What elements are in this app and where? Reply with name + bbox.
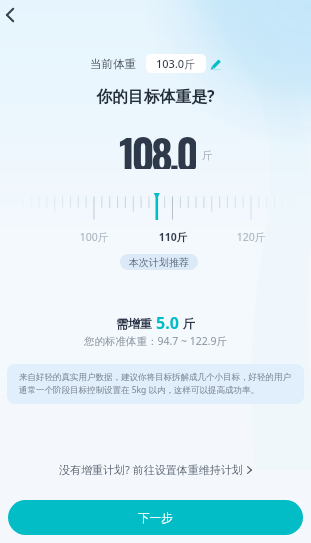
staticText: 下一步 bbox=[138, 511, 173, 525]
staticText: 100斤 bbox=[64, 230, 124, 244]
staticText: 斤 bbox=[202, 149, 213, 162]
staticText: 110斤 bbox=[143, 230, 203, 244]
staticText: 本次计划推荐 bbox=[129, 256, 189, 269]
staticText: 需增重 bbox=[116, 316, 152, 331]
staticText: 108.0 bbox=[119, 122, 196, 169]
staticText: 斤 bbox=[183, 316, 195, 331]
staticText: 来自好轻的真实用户数据，建议你将目标拆解成几个小目标，好轻的用户通常一个阶段目标… bbox=[19, 372, 294, 396]
staticText: 120斤 bbox=[221, 230, 281, 244]
button[interactable]: 没有增重计划? 前往设置体重维持计划 bbox=[0, 460, 311, 479]
staticText: 5.0 bbox=[156, 312, 179, 334]
button[interactable]: 下一步 bbox=[8, 500, 303, 535]
staticText: 当前体重 bbox=[90, 57, 136, 71]
staticText: 103.0斤 bbox=[156, 56, 196, 71]
button[interactable]: Edit weight bbox=[209, 55, 222, 73]
staticText: 您的标准体重：94.7 ~ 122.9斤 bbox=[0, 334, 311, 348]
button[interactable]: 本次计划推荐 bbox=[120, 254, 198, 270]
staticText: 没有增重计划? 前往设置体重维持计划 bbox=[59, 462, 243, 477]
button[interactable]: 103.0斤 bbox=[146, 54, 206, 73]
staticText: 你的目标体重是? bbox=[0, 85, 311, 107]
button[interactable]: Back bbox=[0, 0, 30, 30]
